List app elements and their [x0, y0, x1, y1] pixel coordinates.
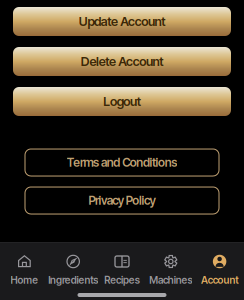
staticText: Machines [149, 274, 192, 286]
button[interactable]: Ingredients [49, 254, 98, 284]
staticText: Update Account [79, 14, 165, 29]
staticText: Terms and Conditions [67, 155, 177, 170]
button[interactable]: Recipes [98, 254, 146, 284]
button[interactable]: Terms and Conditions [25, 149, 219, 176]
staticText: Privacy Policy [88, 193, 155, 208]
staticText: Ingredients [48, 274, 98, 286]
button[interactable]: Delete Account [13, 47, 231, 76]
staticText: Delete Account [81, 54, 163, 69]
button[interactable]: Home [0, 254, 49, 284]
staticText: Logout [103, 94, 141, 109]
button[interactable]: Machines [146, 254, 195, 284]
staticText: Recipes [104, 274, 140, 286]
button[interactable]: Privacy Policy [25, 187, 219, 214]
button[interactable]: Update Account [13, 7, 231, 36]
staticText: Account [201, 274, 238, 286]
button[interactable]: Logout [13, 87, 231, 116]
button[interactable]: Account [195, 254, 244, 284]
staticText: Home [10, 274, 38, 286]
